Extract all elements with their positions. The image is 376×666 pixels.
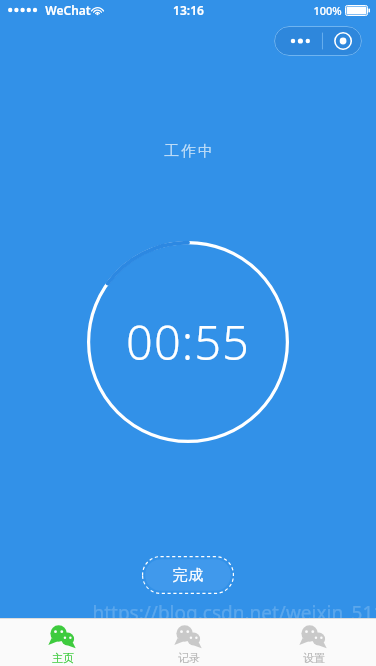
staticText: 13:16: [173, 2, 204, 18]
staticText: 100%: [313, 3, 342, 18]
staticText: 记录: [178, 651, 200, 665]
staticText: 工作中: [163, 142, 214, 161]
button[interactable]: Mini program menu: [274, 26, 362, 56]
staticText: 00:55: [126, 310, 250, 374]
button[interactable]: 完成: [142, 556, 234, 594]
staticText: WeChat: [45, 2, 91, 18]
button[interactable]: 主页: [0, 619, 126, 666]
staticText: 完成: [172, 566, 204, 585]
staticText: https://blog.csdn.net/weixin_51186210: [92, 600, 376, 626]
button[interactable]: 记录: [126, 619, 251, 666]
staticText: 主页: [52, 651, 74, 665]
button[interactable]: 设置: [251, 619, 376, 666]
staticText: 设置: [303, 651, 325, 665]
